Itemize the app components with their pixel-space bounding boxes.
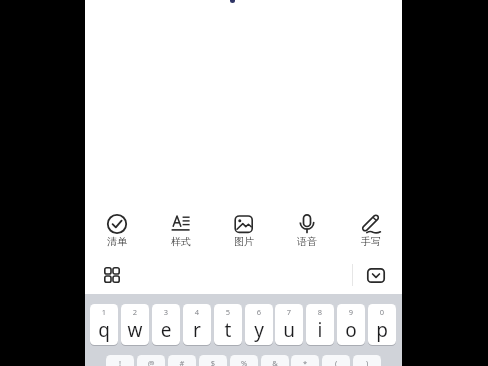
button[interactable]: 1 [90,304,118,345]
staticText: 手写 [343,235,399,248]
button[interactable]: 手写 [343,210,399,250]
button[interactable]: @ [137,355,165,366]
button[interactable]: ( [322,355,350,366]
staticText: 1 [90,307,118,317]
staticText: w [121,317,149,343]
staticText: 0 [368,307,396,317]
staticText: 8 [306,307,334,317]
button[interactable]: # [168,355,196,366]
staticText: # [168,358,196,366]
staticText: & [261,358,289,366]
button[interactable]: 3 [152,304,180,345]
staticText: i [306,317,334,343]
button[interactable]: 7 [275,304,303,345]
button[interactable]: $ [199,355,227,366]
staticText: ) [353,358,381,366]
staticText: y [245,317,273,343]
button[interactable]: 清单 [89,210,145,250]
staticText: ! [106,358,134,366]
staticText: r [183,317,211,343]
staticText: t [214,317,242,343]
button[interactable]: 语音 [279,210,335,250]
staticText: 4 [183,307,211,317]
button[interactable]: 9 [337,304,365,345]
button[interactable]: ) [353,355,381,366]
staticText: e [152,317,180,343]
staticText: 6 [245,307,273,317]
button[interactable]: 5 [214,304,242,345]
button[interactable]: 图片 [216,210,272,250]
staticText: 3 [152,307,180,317]
button[interactable] [96,260,128,290]
staticText: * [291,358,319,366]
button[interactable]: % [230,355,258,366]
button[interactable]: & [261,355,289,366]
button[interactable]: 2 [121,304,149,345]
staticText: 9 [337,307,365,317]
button[interactable] [364,260,388,290]
staticText: 清单 [89,235,145,248]
staticText: q [90,317,118,343]
staticText: ( [322,358,350,366]
staticText: p [368,317,396,343]
staticText: 样式 [153,235,209,248]
staticText: % [230,358,258,366]
staticText: 2 [121,307,149,317]
staticText: 7 [275,307,303,317]
staticText: u [275,317,303,343]
staticText: 5 [214,307,242,317]
button[interactable]: 4 [183,304,211,345]
button[interactable]: ! [106,355,134,366]
staticText: 语音 [279,235,335,248]
staticText: o [337,317,365,343]
button[interactable]: 0 [368,304,396,345]
button[interactable]: 8 [306,304,334,345]
button[interactable]: 样式 [153,210,209,250]
button[interactable]: * [291,355,319,366]
button[interactable]: 6 [245,304,273,345]
staticText: $ [199,358,227,366]
staticText: @ [137,358,165,366]
staticText: 图片 [216,235,272,248]
